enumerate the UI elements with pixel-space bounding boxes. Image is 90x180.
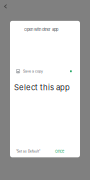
staticText: Select this app — [14, 83, 70, 92]
button[interactable]: "Set as Default" — [10, 148, 40, 155]
button[interactable]: Select this app — [10, 82, 80, 92]
button[interactable]: Save a copy — [10, 67, 80, 75]
staticText: "Set as Default" — [16, 150, 40, 153]
staticText: Once — [55, 149, 64, 154]
button[interactable]: Back — [2, 2, 10, 10]
staticText: Save a copy — [23, 69, 43, 73]
button[interactable]: Once — [55, 148, 80, 155]
staticText: Open with other app — [24, 27, 58, 32]
